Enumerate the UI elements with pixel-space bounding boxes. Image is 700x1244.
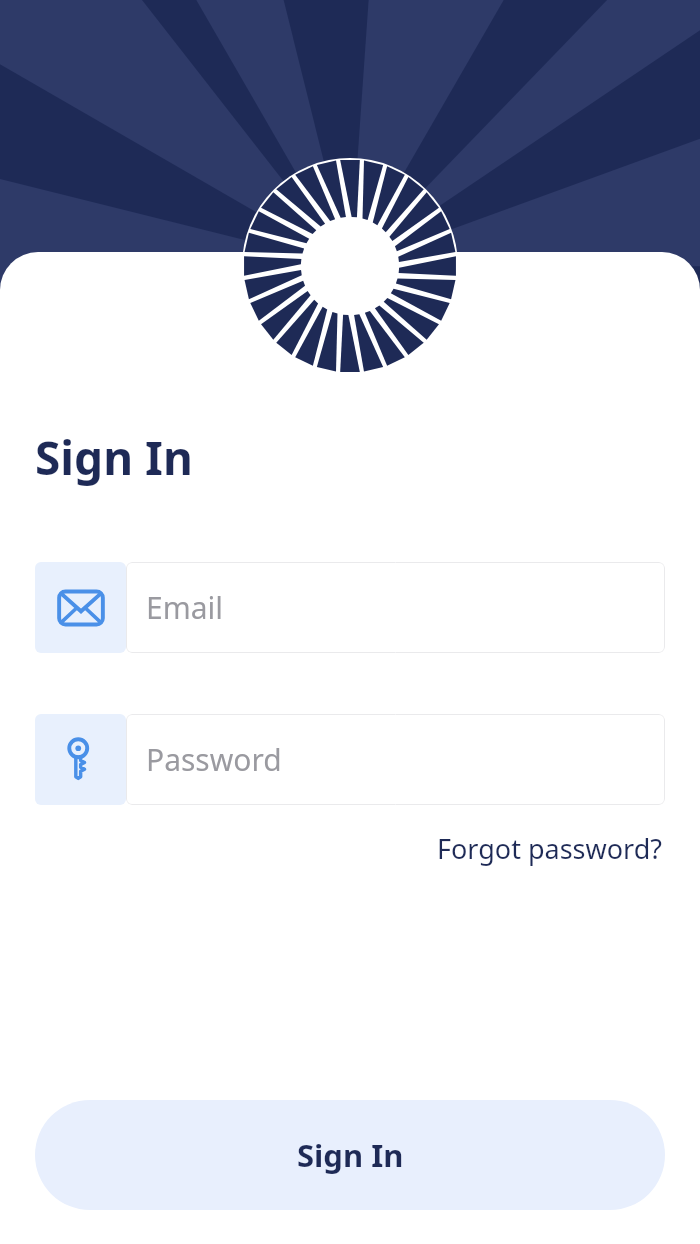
staticText: Sign In [297, 1134, 404, 1176]
button[interactable]: Email [35, 562, 665, 653]
button[interactable]: Password [35, 714, 665, 805]
staticText: Sign In [35, 426, 193, 488]
button[interactable]: Forgot password? [435, 826, 665, 871]
staticText: Password [146, 739, 282, 780]
staticText: Forgot password? [437, 830, 663, 867]
button[interactable]: Sign In [35, 1100, 665, 1210]
other: Password [58, 737, 104, 783]
other: Email [58, 585, 104, 631]
staticText: Email [146, 587, 224, 628]
